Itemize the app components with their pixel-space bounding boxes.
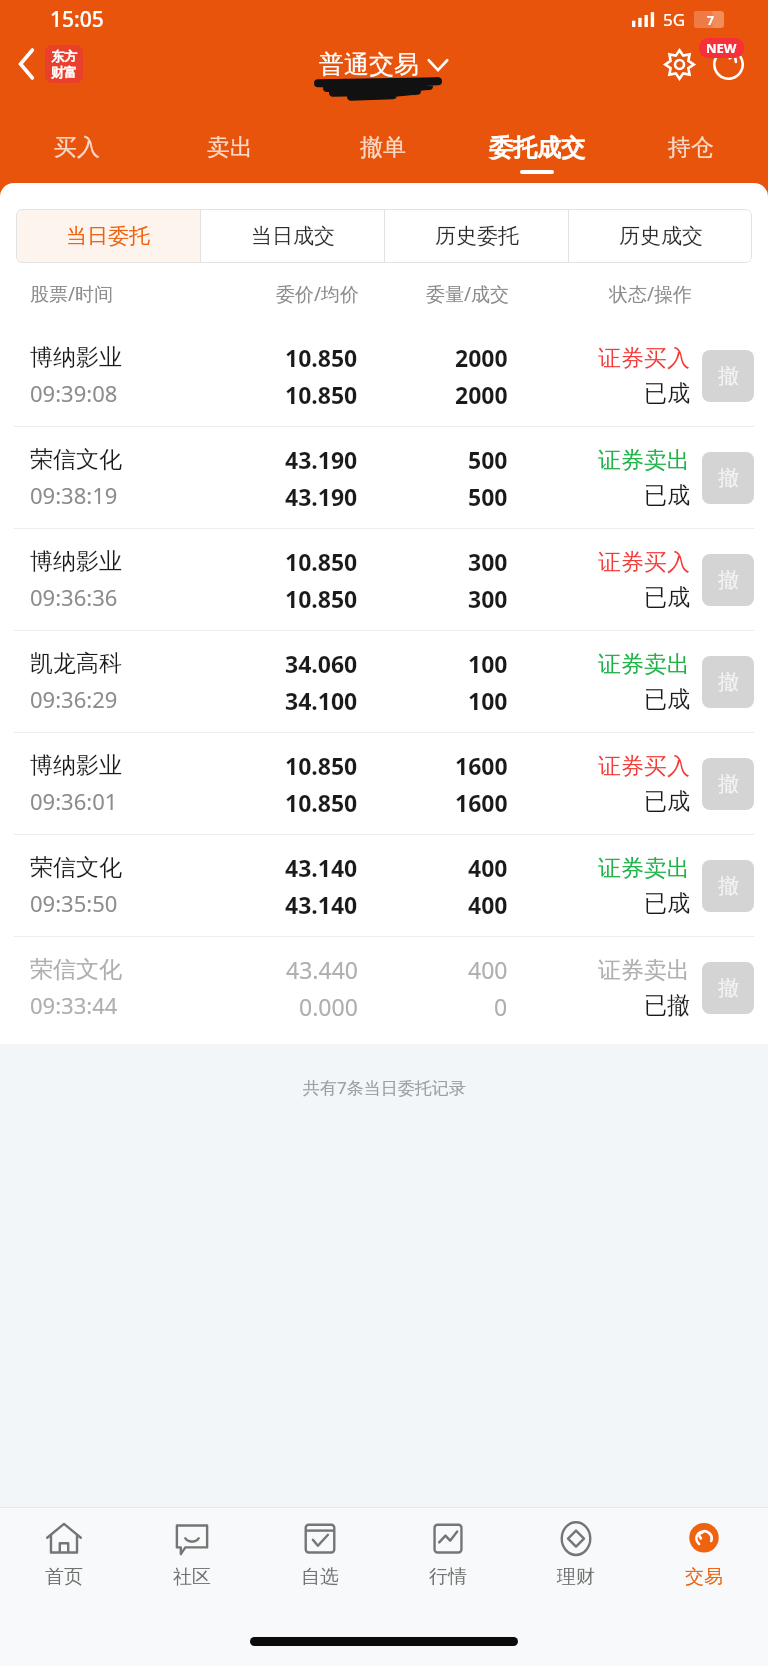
staticText: 自选 [301, 1565, 339, 1589]
staticText: 已成 [644, 685, 690, 714]
staticText: 已成 [644, 481, 690, 510]
button[interactable]: 行情 [384, 1508, 512, 1616]
staticText: 股票/时间 [30, 281, 196, 307]
staticText: 10.850 [285, 583, 358, 614]
staticText: 400 [468, 954, 508, 985]
button[interactable]: 撤 [702, 860, 754, 912]
button[interactable]: 首页 [0, 1508, 128, 1616]
button[interactable]: 买入 [0, 123, 153, 183]
staticText: 委价/均价 [196, 281, 359, 307]
staticText: NEW [706, 39, 737, 57]
staticText: 撤 [718, 873, 739, 899]
staticText: 34.060 [285, 648, 358, 679]
button[interactable]: 历史委托 [385, 209, 568, 263]
button[interactable]: 自选 [256, 1508, 384, 1616]
button[interactable]: 理财 [512, 1508, 640, 1616]
staticText: 10.850 [285, 750, 358, 781]
button[interactable]: 撤 [702, 656, 754, 708]
staticText: 已成 [644, 583, 690, 612]
button[interactable]: 凯龙高科 [0, 631, 768, 732]
staticText: 行情 [429, 1565, 467, 1589]
staticText: 撤 [718, 363, 739, 389]
staticText: 撤 [718, 669, 739, 695]
staticText: 博纳影业 [30, 547, 122, 576]
staticText: 09:39:08 [30, 378, 118, 408]
staticText: 证券买入 [598, 344, 690, 373]
staticText: 撤 [718, 771, 739, 797]
staticText: 已成 [644, 379, 690, 408]
staticText: 43.140 [285, 852, 358, 883]
button[interactable]: 博纳影业 [0, 529, 768, 630]
staticText: 荣信文化 [30, 853, 122, 882]
staticText: 委托成交 [489, 133, 585, 163]
staticText: 撤单 [360, 133, 406, 162]
staticText: 撤 [718, 567, 739, 593]
button[interactable]: 卖出 [153, 123, 306, 183]
staticText: 300 [468, 546, 508, 577]
staticText: 09:35:50 [30, 888, 118, 918]
button[interactable]: 当日委托 [16, 209, 200, 263]
button[interactable]: 社区 [128, 1508, 256, 1616]
button[interactable]: 荣信文化 [0, 937, 768, 1038]
staticText: 已成 [644, 889, 690, 918]
staticText: 博纳影业 [30, 343, 122, 372]
staticText: 共有7条当日委托记录 [303, 1076, 466, 1099]
button[interactable]: 撤 [702, 452, 754, 504]
staticText: 当日委托 [66, 223, 150, 249]
button[interactable]: 普通交易 [319, 49, 449, 80]
staticText: 09:38:19 [30, 480, 118, 510]
staticText: 卖出 [207, 133, 253, 162]
staticText: 证券买入 [598, 752, 690, 781]
staticText: 社区 [173, 1565, 211, 1589]
staticText: 证券卖出 [598, 446, 690, 475]
staticText: 09:33:44 [30, 990, 118, 1020]
staticText: 当日成交 [251, 223, 335, 249]
staticText: 0.000 [299, 991, 358, 1022]
staticText: 首页 [45, 1565, 83, 1589]
button[interactable]: 当日成交 [201, 209, 384, 263]
button[interactable]: 历史成交 [569, 209, 752, 263]
staticText: 撤 [718, 975, 739, 1001]
staticText: 10.850 [285, 787, 358, 818]
staticText: 证券卖出 [598, 650, 690, 679]
staticText: 证券卖出 [598, 956, 690, 985]
staticText: 400 [468, 852, 508, 883]
staticText: 09:36:29 [30, 684, 118, 714]
staticText: 34.100 [285, 685, 358, 716]
staticText: 历史成交 [619, 223, 703, 249]
button[interactable]: 设置 [660, 45, 699, 84]
staticText: 交易 [685, 1565, 723, 1589]
button[interactable]: 持仓 [614, 123, 768, 183]
button[interactable]: 撤 [702, 758, 754, 810]
button[interactable]: 返回 [14, 41, 87, 87]
staticText: 500 [468, 444, 508, 475]
staticText: 证券卖出 [598, 854, 690, 883]
staticText: 100 [468, 648, 508, 679]
staticText: 2000 [455, 379, 508, 410]
staticText: 1600 [455, 750, 508, 781]
staticText: 财富 [51, 64, 77, 80]
staticText: 43.140 [285, 889, 358, 920]
staticText: 7 [707, 12, 714, 28]
button[interactable]: 交易 [640, 1508, 768, 1616]
staticText: 400 [468, 889, 508, 920]
staticText: 15:05 [50, 5, 104, 34]
staticText: 100 [468, 685, 508, 716]
button[interactable]: 撤 [702, 350, 754, 402]
button[interactable]: 委托成交 [460, 123, 614, 183]
button[interactable]: 撤单 [306, 123, 460, 183]
button[interactable]: 博纳影业 [0, 733, 768, 834]
button[interactable]: 博纳影业 [0, 325, 768, 426]
staticText: 2000 [455, 342, 508, 373]
staticText: 荣信文化 [30, 445, 122, 474]
button[interactable]: 撤 [702, 554, 754, 606]
button[interactable]: 荣信文化 [0, 427, 768, 528]
staticText: 300 [468, 583, 508, 614]
button[interactable]: 刷新 [709, 45, 748, 84]
button[interactable]: 荣信文化 [0, 835, 768, 936]
button[interactable]: 撤 [702, 962, 754, 1014]
staticText: 10.850 [285, 342, 358, 373]
staticText: 凯龙高科 [30, 649, 122, 678]
staticText: 委量/成交 [359, 281, 509, 307]
staticText: 0 [494, 991, 508, 1022]
